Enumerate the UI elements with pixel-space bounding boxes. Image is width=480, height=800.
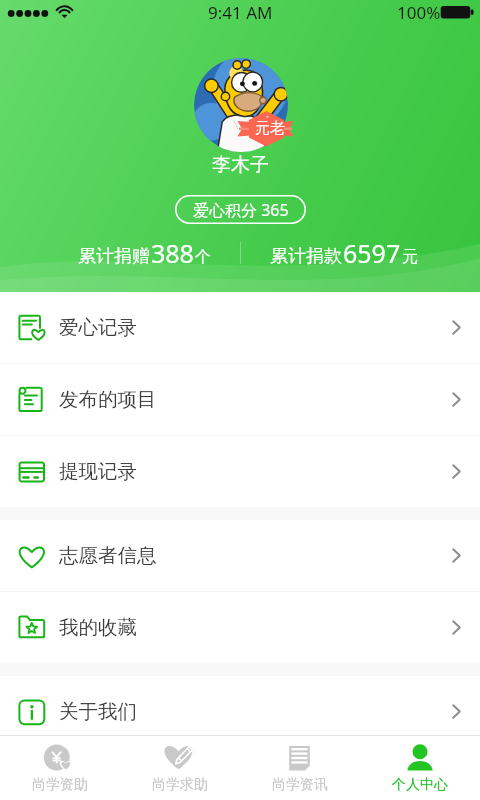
staticText: 志愿者信息 bbox=[59, 543, 157, 568]
staticText: 李木子 bbox=[212, 153, 269, 177]
staticText: 累计捐款 bbox=[270, 245, 342, 268]
staticText: 爱心积分 365 bbox=[193, 199, 289, 221]
staticText: 元 bbox=[402, 247, 418, 267]
button[interactable]: 志愿者信息 bbox=[0, 520, 480, 591]
staticText: 个人中心 bbox=[392, 776, 448, 794]
staticText: 爱心记录 bbox=[59, 315, 137, 340]
staticText: 6597 bbox=[343, 236, 401, 270]
staticText: 累计捐赠 bbox=[78, 245, 150, 268]
staticText: 9:41 AM bbox=[208, 1, 273, 24]
staticText: 关于我们 bbox=[59, 699, 137, 724]
staticText: 尚学资助 bbox=[32, 776, 88, 794]
staticText: 尚学资讯 bbox=[272, 776, 328, 794]
button[interactable]: 个人中心 bbox=[360, 736, 480, 800]
staticText: 元老 bbox=[255, 119, 285, 138]
button[interactable]: 尚学资讯 bbox=[240, 736, 360, 800]
staticText: 尚学求助 bbox=[152, 776, 208, 794]
button[interactable]: 尚学求助 bbox=[120, 736, 240, 800]
button[interactable]: 我的收藏 bbox=[0, 592, 480, 663]
button[interactable]: 发布的项目 bbox=[0, 364, 480, 435]
staticText: 个 bbox=[195, 247, 211, 267]
staticText: 提现记录 bbox=[59, 459, 137, 484]
button[interactable]: 爱心记录 bbox=[0, 292, 480, 363]
button[interactable]: 尚学资助 bbox=[0, 736, 120, 800]
button[interactable]: 关于我们 bbox=[0, 676, 480, 747]
staticText: 100% bbox=[397, 1, 441, 24]
staticText: 388 bbox=[151, 236, 194, 270]
button[interactable]: 提现记录 bbox=[0, 436, 480, 507]
staticText: 我的收藏 bbox=[59, 615, 137, 640]
staticText: 发布的项目 bbox=[59, 387, 157, 412]
